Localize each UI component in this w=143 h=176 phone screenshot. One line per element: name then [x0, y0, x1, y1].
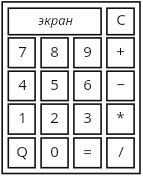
button[interactable]: Clear — [106, 7, 135, 35]
button[interactable]: 6 — [73, 70, 102, 101]
staticText: − — [116, 74, 125, 94]
staticText: C — [116, 9, 126, 29]
button[interactable]: 5 — [40, 70, 69, 101]
staticText: 6 — [83, 74, 92, 94]
staticText: / — [118, 141, 124, 161]
staticText: 9 — [83, 41, 92, 61]
button[interactable]: 9 — [73, 37, 102, 68]
staticText: 4 — [18, 74, 27, 94]
button[interactable]: / — [106, 137, 135, 168]
button[interactable]: 2 — [40, 103, 69, 135]
staticText: экран — [38, 11, 73, 29]
staticText: 0 — [50, 141, 59, 161]
button[interactable]: 7 — [8, 37, 36, 68]
staticText: + — [116, 41, 125, 61]
button[interactable]: Q — [8, 137, 36, 168]
staticText: 3 — [83, 107, 92, 127]
staticText: * — [116, 107, 125, 127]
staticText: = — [83, 141, 92, 161]
staticText: 2 — [50, 107, 59, 127]
staticText: Q — [16, 141, 28, 161]
button[interactable]: 1 — [8, 103, 36, 135]
button[interactable]: Display — [8, 7, 102, 35]
button[interactable]: 3 — [73, 103, 102, 135]
staticText: 5 — [50, 74, 59, 94]
button[interactable]: 0 — [40, 137, 69, 168]
button[interactable]: − — [106, 70, 135, 101]
button[interactable]: * — [106, 103, 135, 135]
staticText: 8 — [50, 41, 59, 61]
button[interactable]: + — [106, 37, 135, 68]
button[interactable]: = — [73, 137, 102, 168]
staticText: 1 — [18, 107, 27, 127]
button[interactable]: 4 — [8, 70, 36, 101]
button[interactable]: 8 — [40, 37, 69, 68]
staticText: 7 — [18, 41, 27, 61]
